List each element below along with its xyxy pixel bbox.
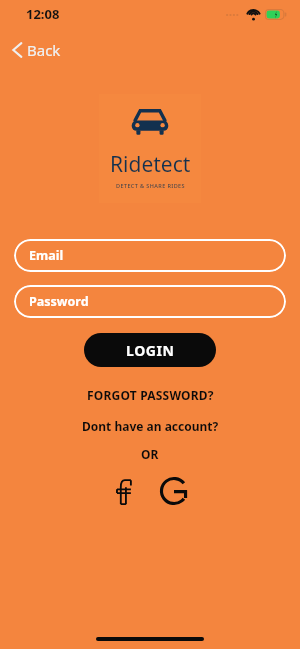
button[interactable]: Dont have an account? [74, 415, 227, 437]
staticText: Back [27, 40, 61, 60]
staticText: LOGIN [126, 341, 175, 360]
staticText: Email [29, 247, 64, 264]
button[interactable]: FORGOT PASSWORD? [79, 384, 222, 406]
staticText: Password [29, 293, 89, 310]
button[interactable]: Sign in with Google [155, 472, 193, 510]
button[interactable]: Sign in with Facebook [107, 474, 141, 508]
staticText: 12:08 [26, 5, 60, 23]
staticText: Dont have an account? [82, 418, 219, 434]
button[interactable]: Email [14, 239, 286, 272]
button[interactable]: Password [14, 285, 286, 318]
staticText: Ridetect [110, 150, 191, 179]
button[interactable]: Back [6, 36, 67, 64]
staticText: OR [141, 446, 159, 462]
staticText: DETECT & SHARE RIDES [116, 182, 185, 189]
button[interactable]: LOGIN [84, 333, 216, 367]
staticText: FORGOT PASSWORD? [87, 387, 214, 403]
